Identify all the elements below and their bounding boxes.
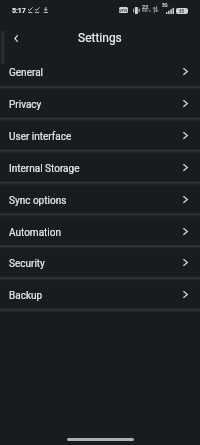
staticText: VPN	[119, 8, 128, 13]
button[interactable]: Back	[2, 25, 29, 52]
staticText: Settings	[78, 31, 122, 45]
staticText: 35	[179, 9, 185, 14]
staticText: Privacy	[9, 99, 42, 111]
button[interactable]: User interface	[0, 119, 200, 151]
staticText: 5:17	[12, 7, 26, 15]
staticText: 22	[142, 4, 149, 10]
button[interactable]: Sync options	[0, 183, 200, 215]
button[interactable]: Backup	[0, 278, 200, 310]
staticText: General	[9, 67, 44, 79]
button[interactable]: Privacy	[0, 87, 200, 119]
button[interactable]: General	[0, 55, 200, 87]
staticText: 5G	[162, 3, 168, 8]
staticText: Backup	[9, 290, 43, 302]
staticText: Sync options	[9, 195, 67, 207]
staticText: Security	[9, 258, 45, 270]
staticText: Internal Storage	[9, 163, 80, 175]
button[interactable]: Internal Storage	[0, 151, 200, 183]
staticText: KB/s	[142, 8, 151, 13]
staticText: User interface	[9, 131, 72, 143]
button[interactable]: Automation	[0, 215, 200, 247]
button[interactable]: Security	[0, 246, 200, 278]
staticText: Automation	[9, 227, 61, 239]
